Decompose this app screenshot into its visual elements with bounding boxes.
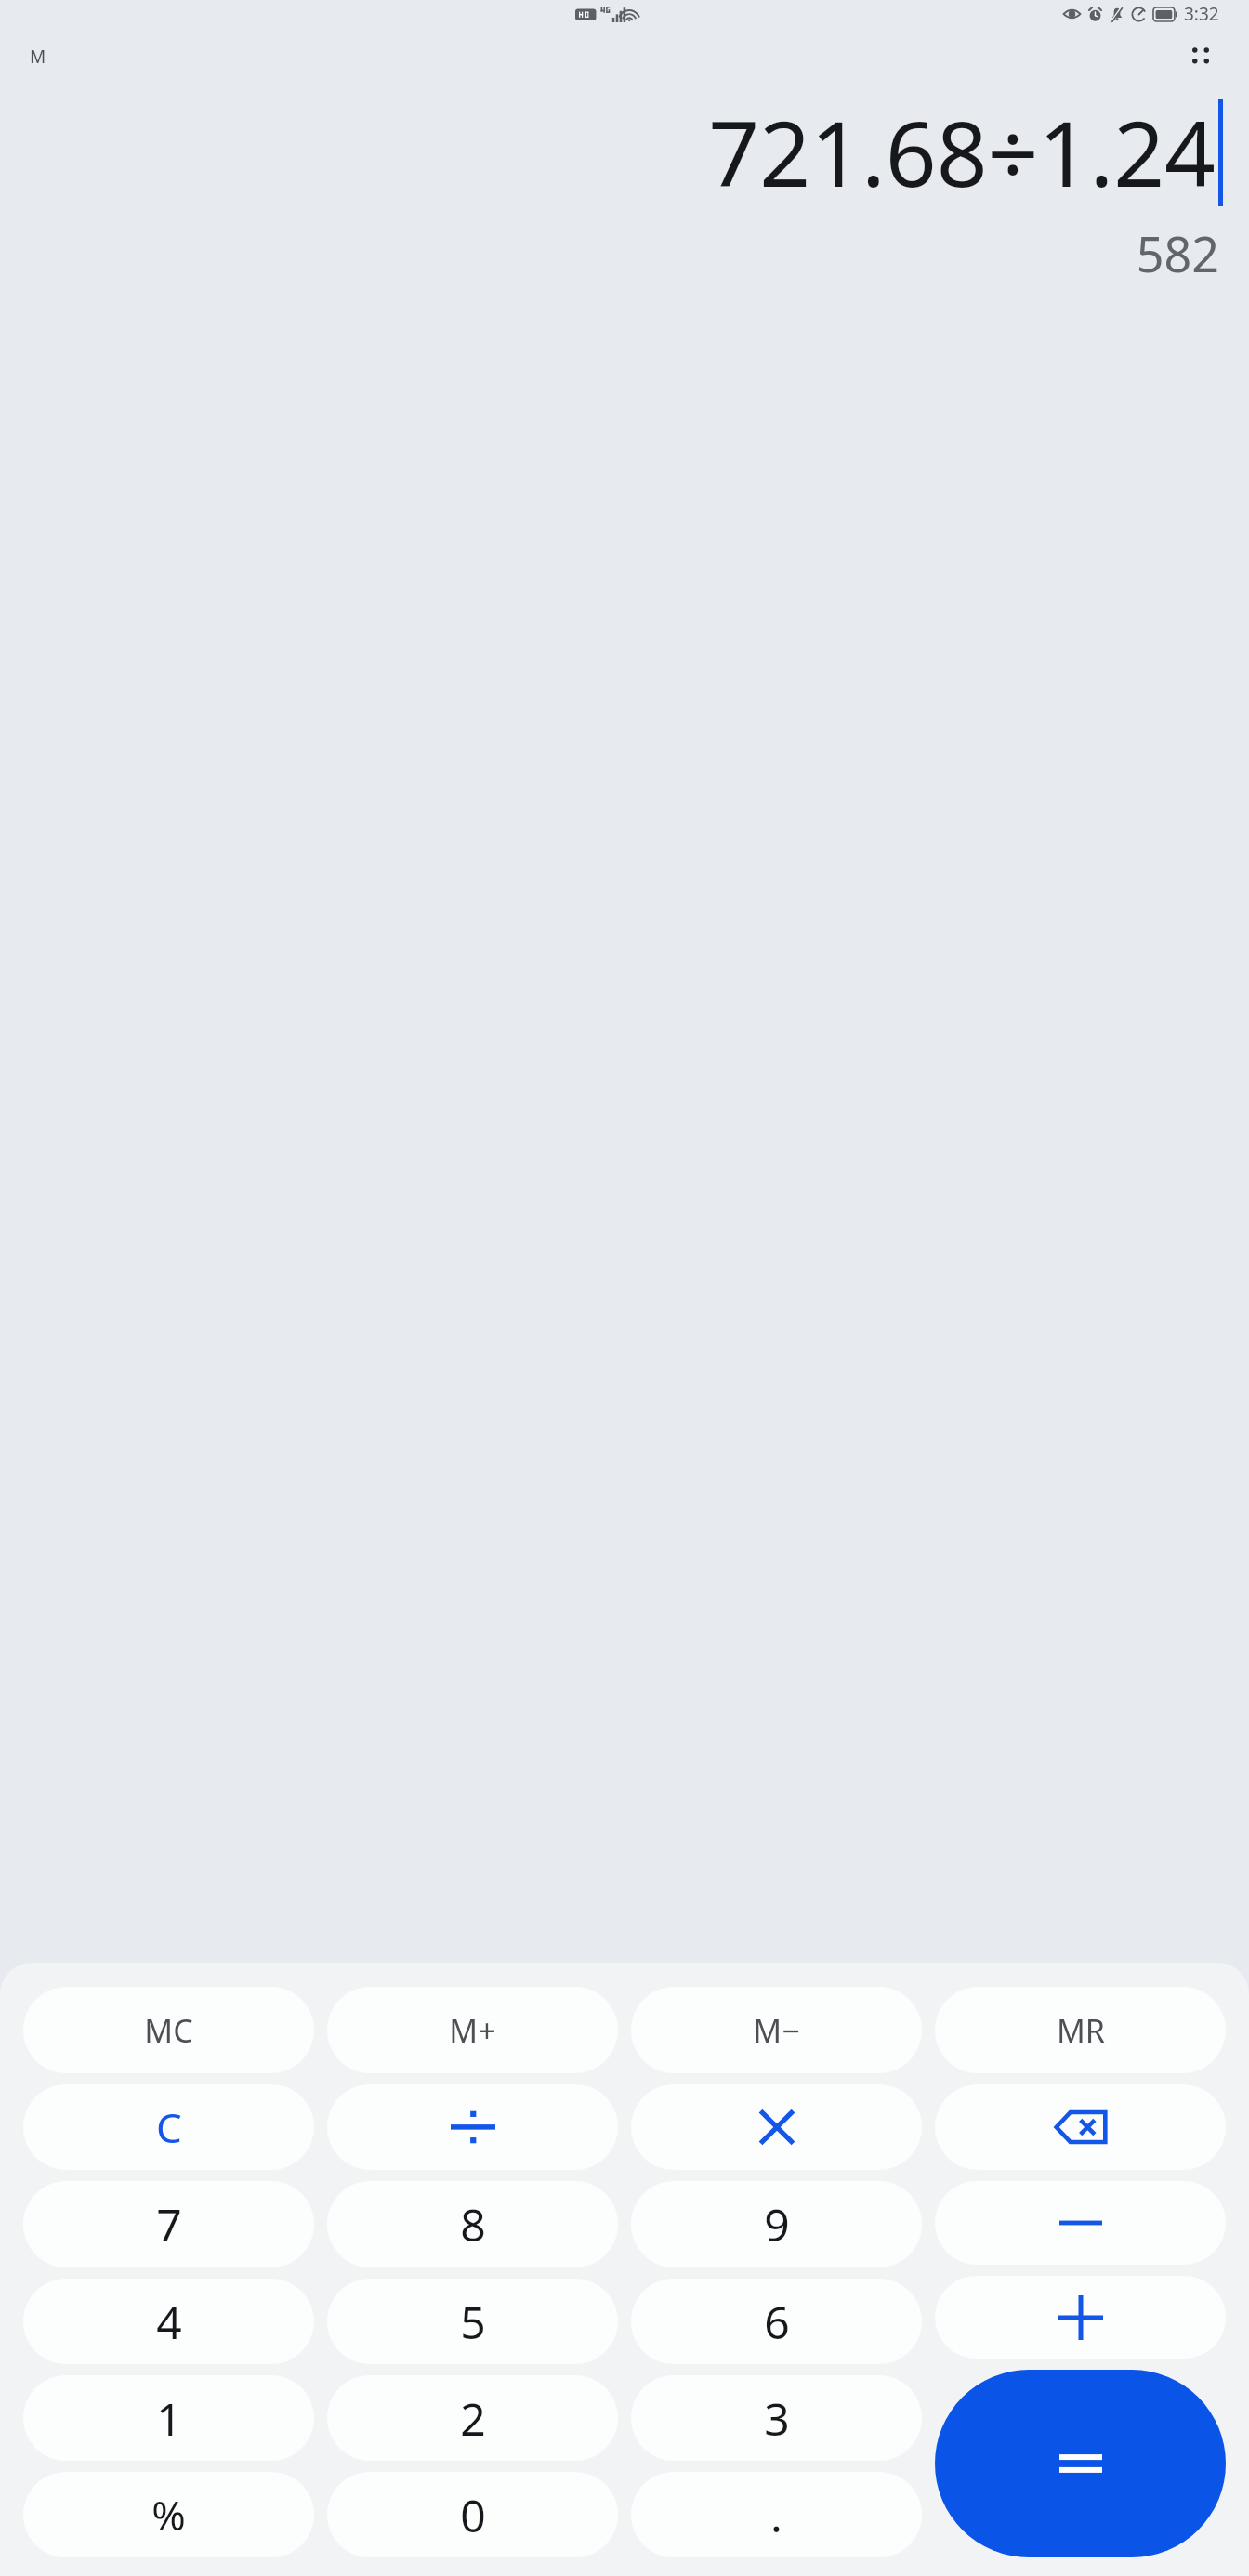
staticText: M bbox=[30, 45, 46, 69]
staticText: 8 bbox=[460, 2194, 486, 2254]
staticText: 9 bbox=[764, 2194, 790, 2254]
staticText: % bbox=[151, 2487, 186, 2543]
button[interactable]: 9 bbox=[631, 2181, 922, 2267]
button[interactable]: Multiply bbox=[631, 2084, 922, 2170]
button[interactable]: Equals bbox=[935, 2370, 1226, 2557]
staticText: MR bbox=[1057, 2009, 1105, 2052]
button[interactable]: 3 bbox=[631, 2375, 922, 2461]
button[interactable]: M+ bbox=[327, 1987, 618, 2073]
button[interactable]: M bbox=[22, 41, 54, 72]
button[interactable]: 6 bbox=[631, 2279, 922, 2364]
button[interactable]: 4 bbox=[23, 2279, 314, 2364]
staticText: M+ bbox=[449, 2009, 496, 2052]
staticText: 6 bbox=[764, 2292, 790, 2352]
button[interactable]: Minus bbox=[935, 2181, 1226, 2265]
button[interactable]: More options bbox=[1177, 33, 1225, 81]
button[interactable]: M− bbox=[631, 1987, 922, 2073]
staticText: M− bbox=[753, 2009, 800, 2052]
button[interactable]: 1 bbox=[23, 2375, 314, 2461]
button[interactable]: MR bbox=[935, 1987, 1226, 2073]
button[interactable]: Plus bbox=[935, 2276, 1226, 2359]
staticText: 2 bbox=[460, 2388, 486, 2449]
button[interactable]: Backspace bbox=[935, 2084, 1226, 2170]
staticText: 721.68÷1.24 bbox=[708, 91, 1216, 213]
staticText: 5 bbox=[460, 2292, 486, 2352]
button[interactable]: 5 bbox=[327, 2279, 618, 2364]
button[interactable]: MC bbox=[23, 1987, 314, 2073]
button[interactable]: 7 bbox=[23, 2181, 314, 2267]
staticText: C bbox=[156, 2099, 182, 2155]
staticText: . bbox=[770, 2485, 782, 2545]
button[interactable]: . bbox=[631, 2472, 922, 2557]
staticText: MC bbox=[144, 2009, 193, 2052]
staticText: 4 bbox=[156, 2292, 182, 2352]
button[interactable]: % bbox=[23, 2472, 314, 2557]
button[interactable]: 0 bbox=[327, 2472, 618, 2557]
staticText: 1 bbox=[156, 2388, 182, 2449]
staticText: 7 bbox=[156, 2194, 182, 2254]
button[interactable]: Divide bbox=[327, 2084, 618, 2170]
staticText: 0 bbox=[460, 2485, 486, 2545]
button[interactable]: C bbox=[23, 2084, 314, 2170]
staticText: 582 bbox=[1136, 220, 1219, 286]
button[interactable]: 8 bbox=[327, 2181, 618, 2267]
button[interactable]: 2 bbox=[327, 2375, 618, 2461]
staticText: 3 bbox=[764, 2388, 790, 2449]
staticText: 3:32 bbox=[1184, 2, 1219, 26]
